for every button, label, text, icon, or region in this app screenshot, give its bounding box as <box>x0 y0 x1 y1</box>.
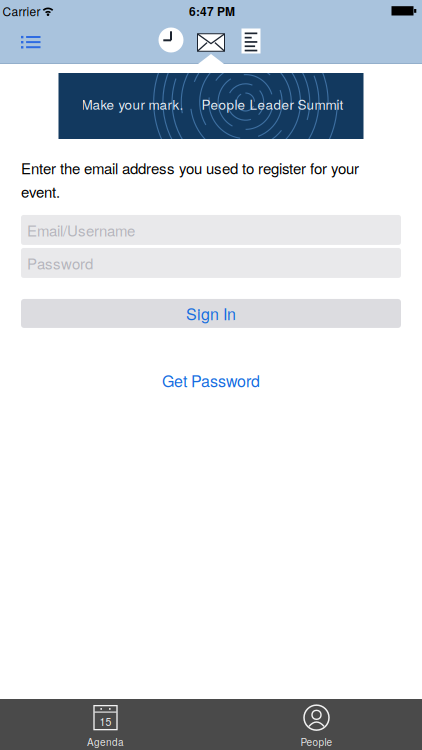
staticText: Enter the email address you used to regi… <box>21 157 359 178</box>
staticText: Sign In <box>186 302 236 325</box>
staticText: People Leader Summit <box>201 94 343 114</box>
button[interactable]: 15 <box>50 703 160 750</box>
button[interactable]: Get Password <box>162 369 260 392</box>
staticText: Carrier <box>2 2 40 20</box>
button[interactable] <box>241 28 260 53</box>
staticText: Agenda <box>87 735 124 749</box>
staticText: event. <box>21 180 60 202</box>
staticText: Make your mark. <box>81 94 183 114</box>
staticText: Email/Username <box>27 219 135 241</box>
button[interactable] <box>20 35 41 50</box>
button[interactable] <box>196 33 225 52</box>
staticText: 15 <box>99 714 111 729</box>
button[interactable] <box>157 26 184 53</box>
staticText: Get Password <box>162 369 260 392</box>
button[interactable]: Email/Username <box>21 215 401 245</box>
button[interactable]: Sign In <box>21 299 401 328</box>
button[interactable]: People <box>261 703 371 750</box>
button[interactable]: Password <box>21 248 401 278</box>
staticText: 6:47 PM <box>189 2 235 20</box>
staticText: Password <box>27 252 93 274</box>
staticText: People <box>300 735 332 749</box>
